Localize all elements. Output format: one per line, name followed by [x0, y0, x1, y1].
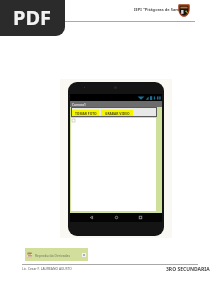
staticText: TOMAR FOTO — [75, 111, 97, 115]
button[interactable]: PDF — [0, 0, 65, 36]
staticText: 3RO SECUNDARIA — [166, 266, 210, 273]
button[interactable]: Back — [89, 215, 94, 220]
staticText: Lic. Cesar F. LAUREANO AGUSTO — [22, 266, 72, 270]
staticText: Camara1 — [72, 102, 86, 106]
staticText: IEPI "Pitágoras de Samos" — [134, 7, 186, 12]
staticText: PDF — [13, 4, 52, 31]
button[interactable]: Home — [114, 215, 119, 220]
staticText: GRABAR VIDEO — [105, 111, 130, 115]
button[interactable]: Reproducão Derivadas — [25, 248, 88, 261]
button[interactable]: Recents — [138, 215, 143, 220]
staticText: Reproducão Derivadas — [35, 253, 71, 257]
button[interactable]: TOMAR FOTO — [72, 110, 99, 116]
button[interactable]: GRABAR VIDEO — [101, 110, 133, 116]
